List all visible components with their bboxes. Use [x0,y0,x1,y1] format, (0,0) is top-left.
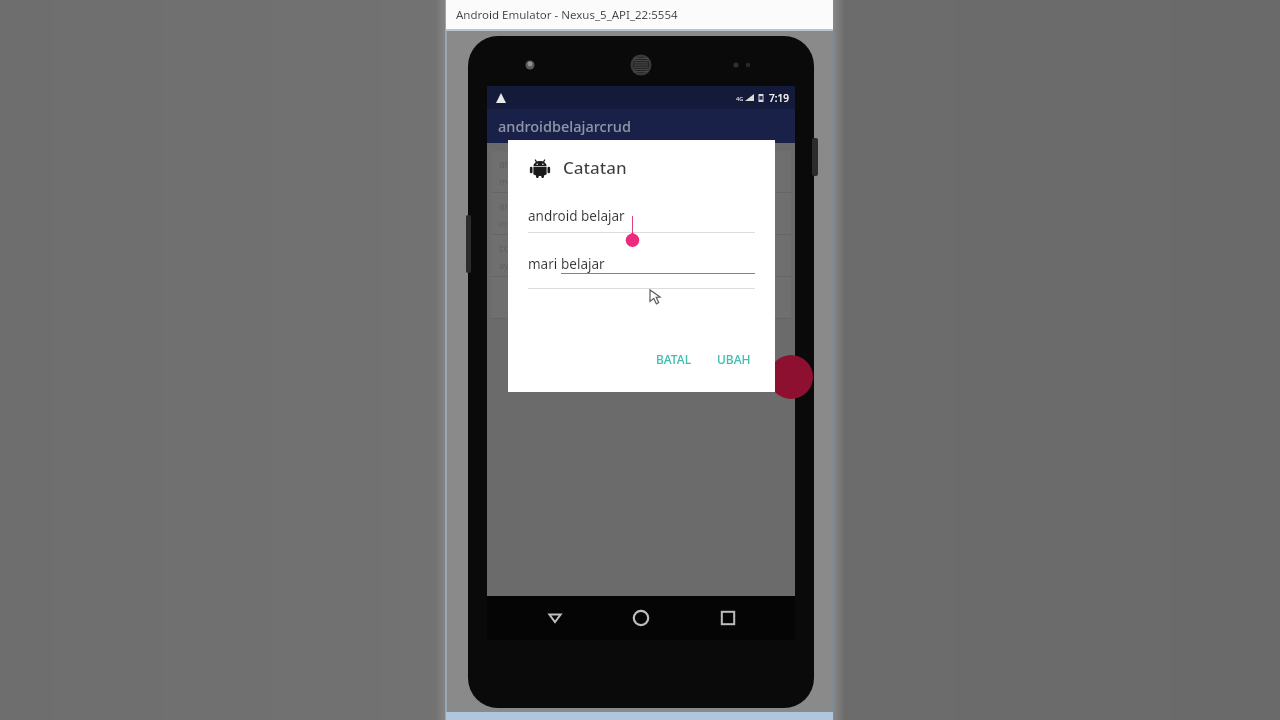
button[interactable]: android studio [491,193,791,235]
staticText: Catatan [563,156,627,179]
button[interactable]: BATAL [646,344,702,374]
button[interactable]: Add note [769,355,813,399]
button[interactable]: android belajar [491,151,791,193]
staticText: 4G [736,95,744,102]
staticText: mari belajar bersama android [499,175,625,187]
staticText: UBAH [717,351,751,367]
staticText: Android Emulator - Nexus_5_API_22:5554 [456,7,678,23]
staticText: coding [499,241,531,255]
staticText: install android studio [499,217,589,229]
button[interactable]: Home [622,599,660,637]
staticText: androidbelajarcrud [498,116,631,136]
staticText: 7:19 [769,91,789,105]
staticText: android studio [499,199,568,213]
staticText: ayo coding setiap hari [499,259,593,271]
button[interactable]: coding [491,235,791,277]
staticText: mari [528,255,561,273]
button[interactable]: mari [528,255,755,289]
button[interactable] [491,277,791,319]
button[interactable]: UBAH [707,344,761,374]
staticText: belajar [561,255,605,273]
button[interactable]: Recents [709,599,747,637]
staticText: android belajar [528,207,625,225]
staticText: BATAL [656,351,692,367]
button[interactable]: Back [536,599,574,637]
button[interactable]: android belajar [528,199,755,233]
staticText: android belajar [499,157,571,171]
